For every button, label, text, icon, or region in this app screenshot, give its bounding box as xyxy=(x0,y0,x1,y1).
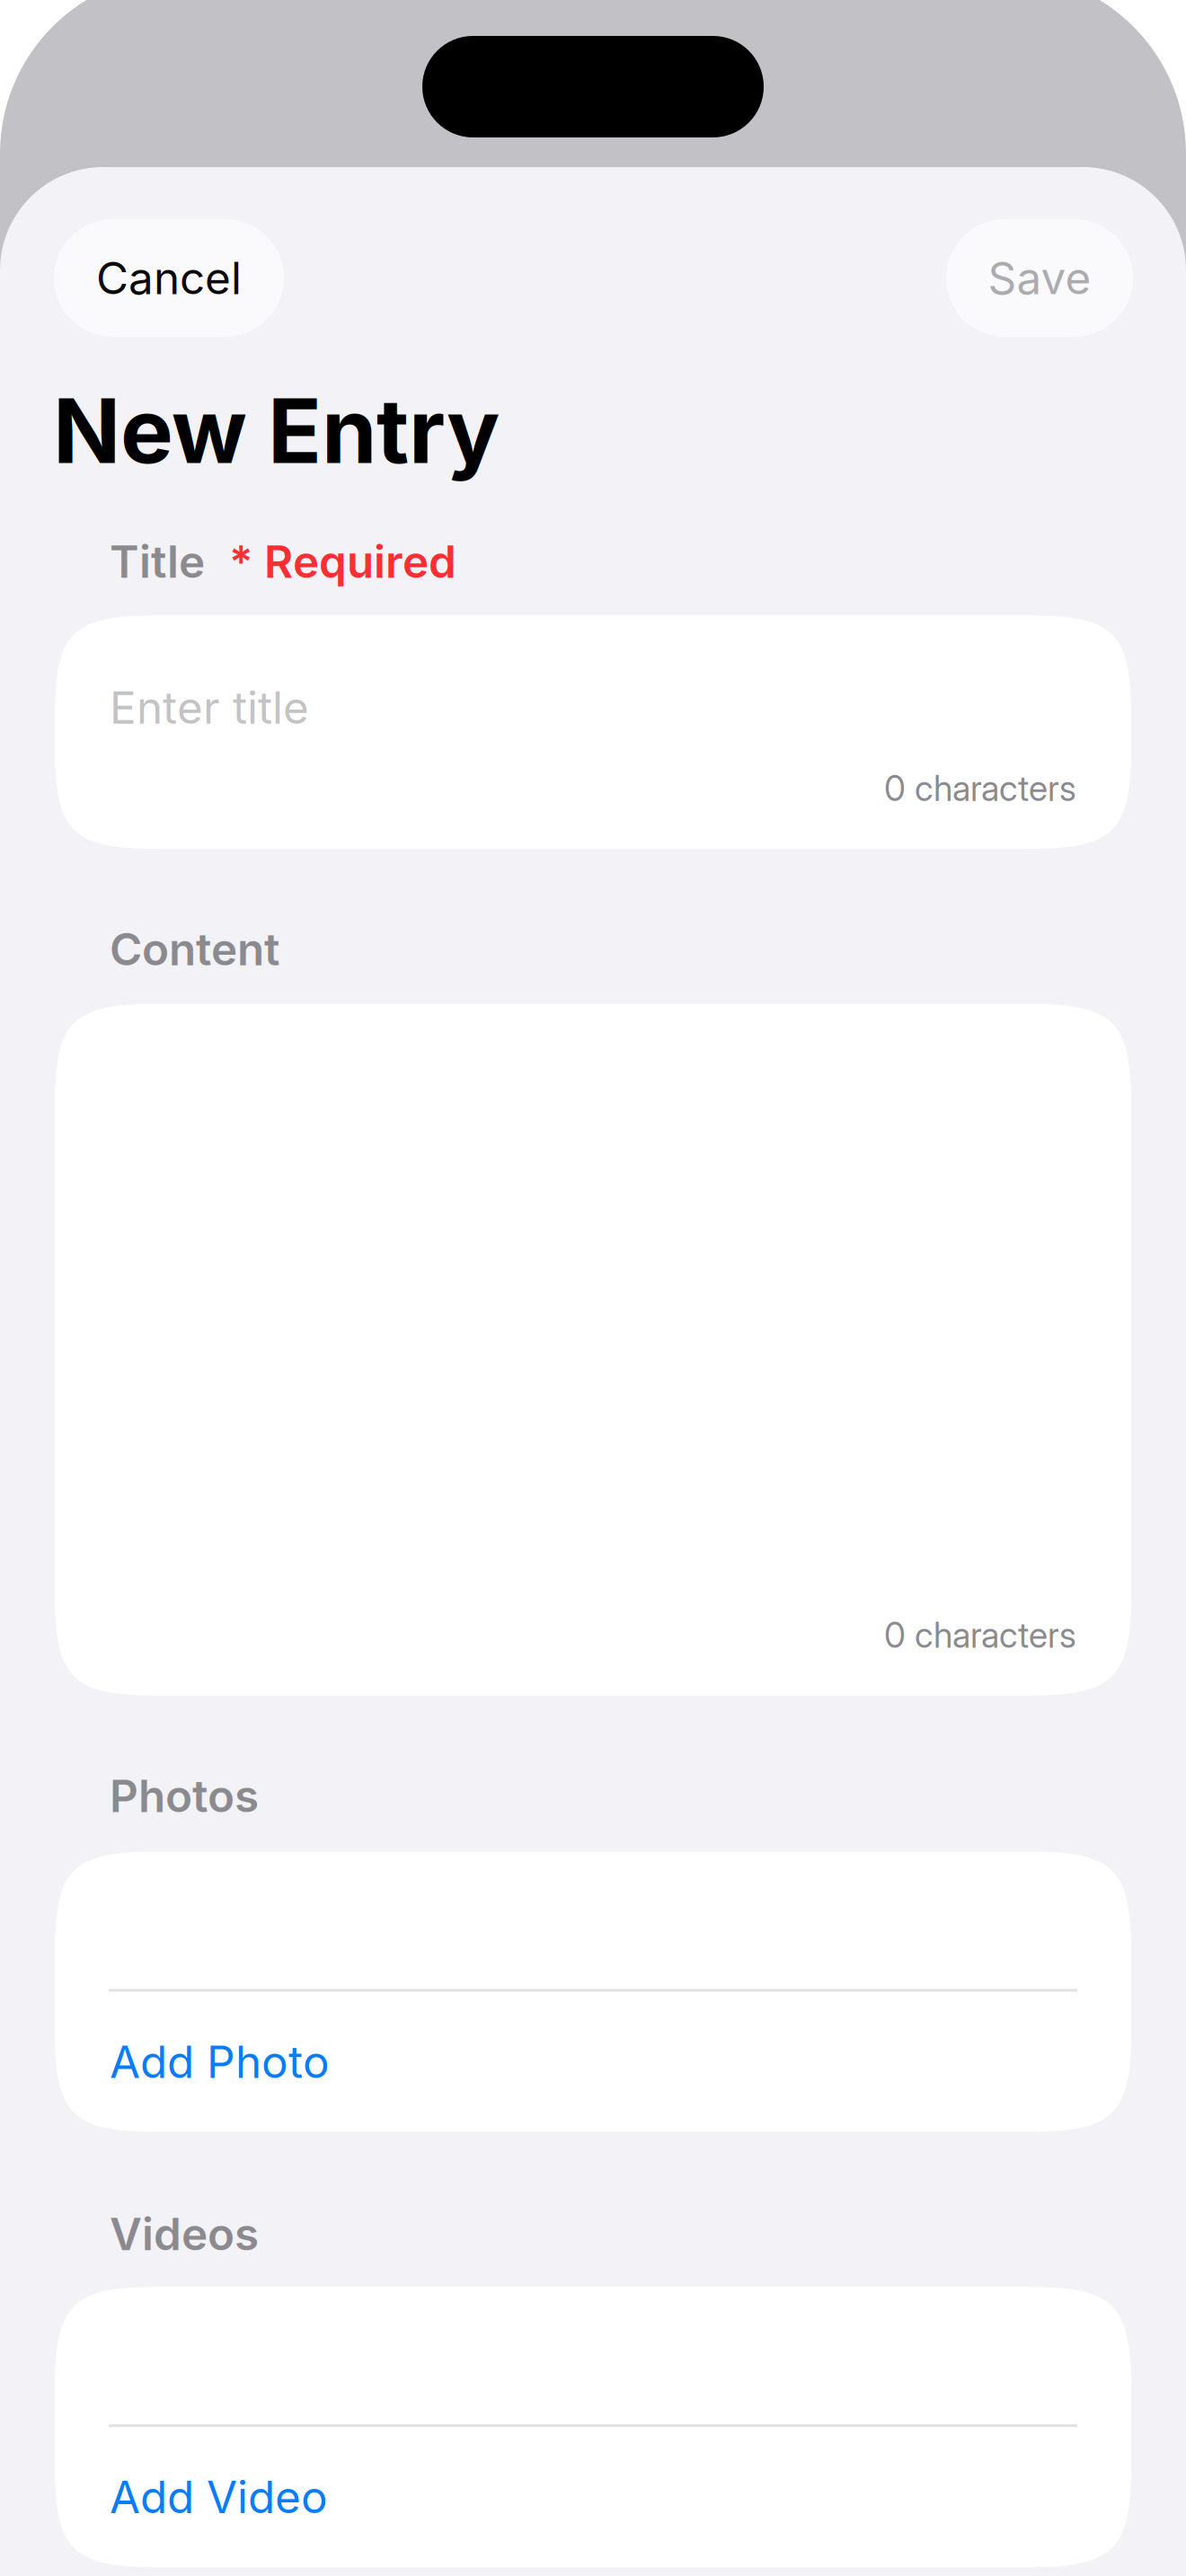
staticText: Save xyxy=(988,251,1091,305)
staticText: Videos xyxy=(110,2207,259,2261)
staticText: Cancel xyxy=(96,251,242,305)
staticText: Add Video xyxy=(110,2470,328,2524)
staticText: Content xyxy=(110,923,279,976)
button[interactable]: Save xyxy=(946,219,1133,337)
staticText: * Required xyxy=(229,535,456,588)
staticText: Add Photo xyxy=(110,2035,330,2089)
staticText: 0 characters xyxy=(884,1614,1076,1656)
button[interactable]: Add Photo xyxy=(55,1992,1131,2132)
staticText: Title xyxy=(110,535,205,588)
button[interactable]: Cancel xyxy=(54,219,284,337)
staticText: Photos xyxy=(110,1769,259,1823)
staticText: 0 characters xyxy=(884,767,1076,809)
button[interactable]: Add Video xyxy=(55,2427,1131,2567)
staticText: Enter title xyxy=(110,681,309,735)
staticText: New Entry xyxy=(53,377,500,484)
